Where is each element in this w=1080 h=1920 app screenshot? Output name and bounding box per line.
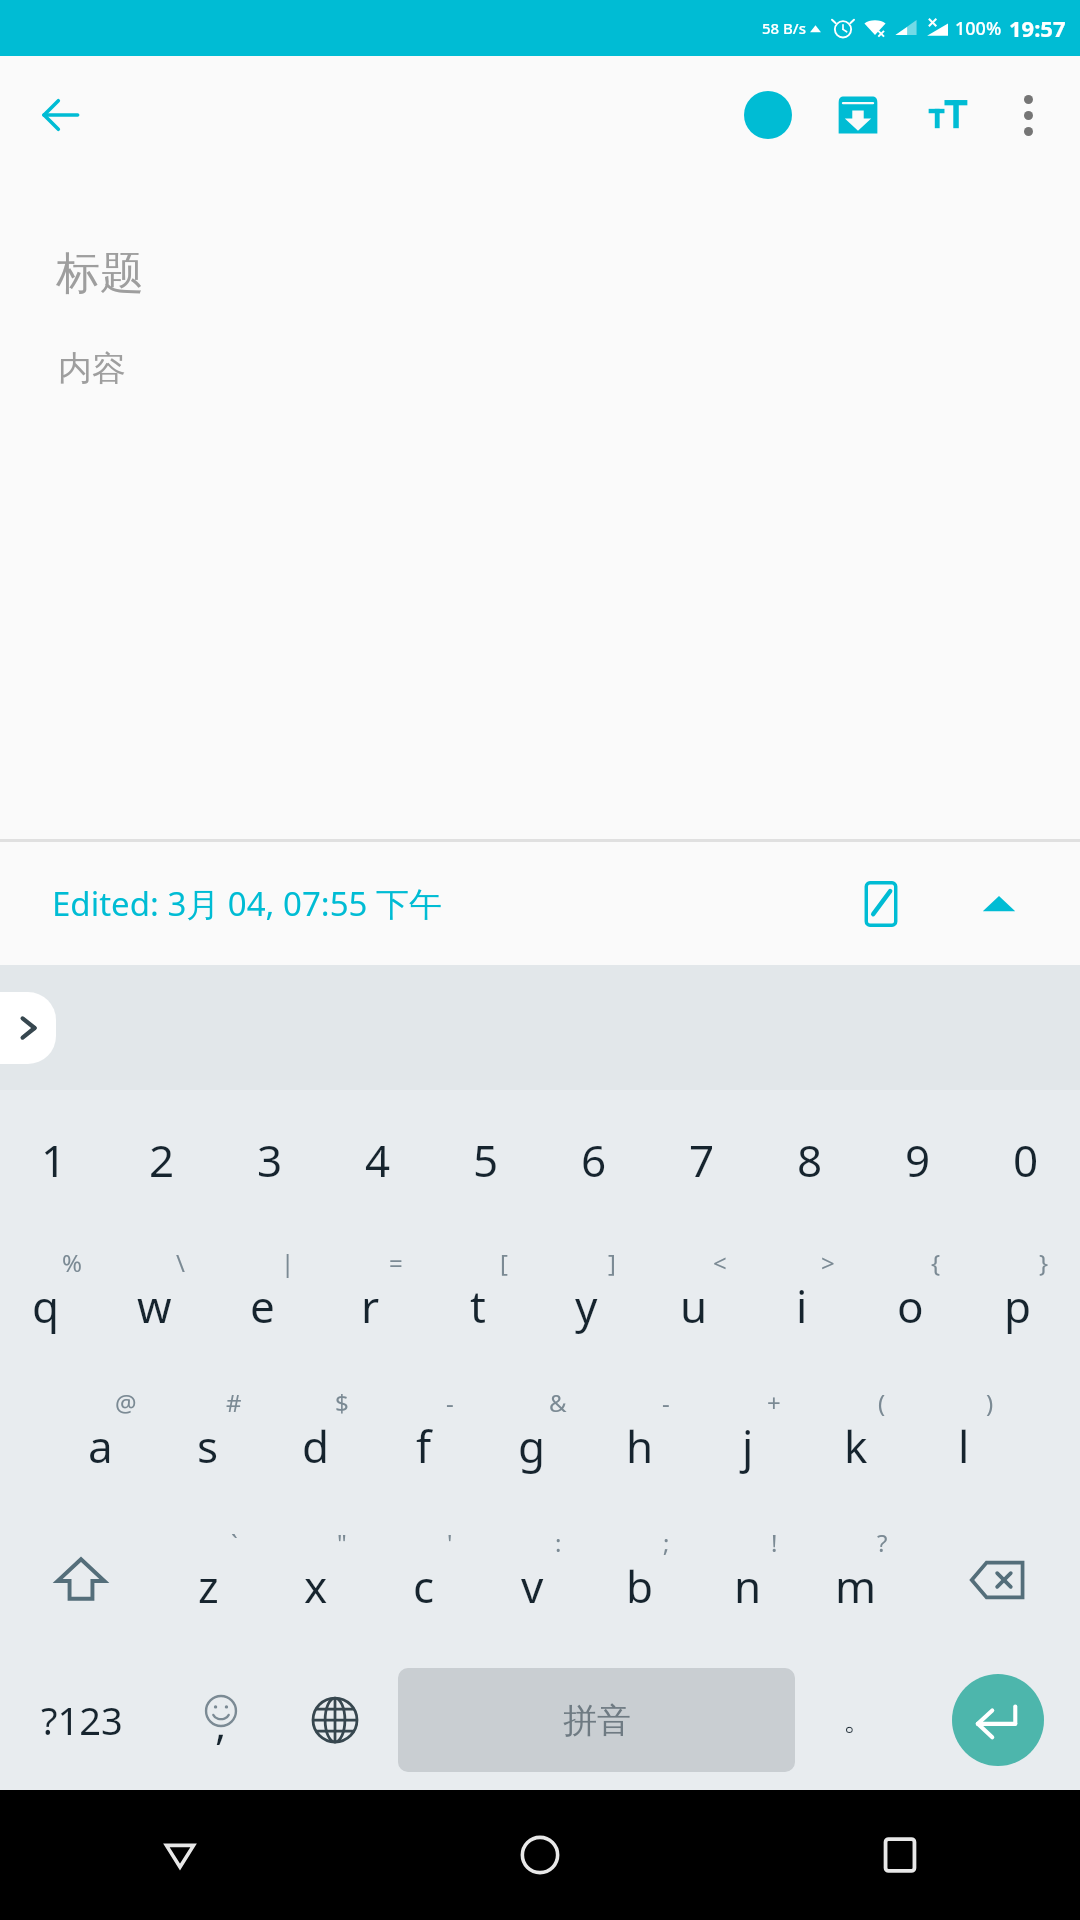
button[interactable]: w <box>108 1230 216 1370</box>
button[interactable]: Backspace <box>918 1510 1080 1650</box>
button[interactable]: e <box>216 1230 324 1370</box>
staticText: n <box>734 1556 762 1616</box>
button[interactable]: a <box>54 1370 162 1510</box>
staticText: f <box>416 1416 432 1476</box>
button[interactable]: 2 <box>108 1090 216 1230</box>
staticText: 9 <box>905 1130 931 1190</box>
button[interactable]: b <box>594 1510 702 1650</box>
button[interactable]: 拼音 <box>398 1668 795 1772</box>
staticText: 3 <box>257 1130 283 1190</box>
button[interactable]: Edit <box>848 871 914 937</box>
button[interactable]: v <box>486 1510 594 1650</box>
staticText: 标题 <box>56 246 144 301</box>
button[interactable]: o <box>864 1230 972 1370</box>
staticText: 8 <box>797 1130 823 1190</box>
staticText: & <box>549 1386 567 1419</box>
button[interactable]: 6 <box>540 1090 648 1230</box>
staticText: b <box>626 1556 654 1616</box>
button[interactable]: u <box>648 1230 756 1370</box>
button[interactable]: y <box>540 1230 648 1370</box>
button[interactable]: 3 <box>216 1090 324 1230</box>
button[interactable]: 标题 <box>0 246 1080 301</box>
staticText: - <box>662 1386 670 1419</box>
button[interactable]: h <box>594 1370 702 1510</box>
button[interactable]: s <box>162 1370 270 1510</box>
button[interactable]: Back <box>0 1790 360 1920</box>
button[interactable]: m <box>810 1510 918 1650</box>
button[interactable]: Enter <box>952 1674 1044 1766</box>
staticText: s <box>197 1416 219 1476</box>
staticText: a <box>88 1416 113 1476</box>
button[interactable]: 1 <box>0 1090 108 1230</box>
staticText: l <box>958 1416 970 1476</box>
staticText: ! <box>771 1526 778 1559</box>
staticText: q <box>32 1276 60 1336</box>
staticText: 6 <box>581 1130 607 1190</box>
staticText: : <box>555 1526 562 1559</box>
staticText: 100% <box>955 16 1002 41</box>
button[interactable]: r <box>324 1230 432 1370</box>
staticText: - <box>446 1386 454 1419</box>
staticText: ] <box>608 1246 616 1279</box>
button[interactable]: 4 <box>324 1090 432 1230</box>
button[interactable]: 0 <box>972 1090 1080 1230</box>
button[interactable]: t <box>432 1230 540 1370</box>
button[interactable]: More options <box>994 81 1062 149</box>
button[interactable]: Home <box>360 1790 720 1920</box>
staticText: k <box>844 1416 868 1476</box>
staticText: e <box>250 1276 275 1336</box>
button[interactable]: x <box>270 1510 378 1650</box>
staticText: m <box>835 1556 877 1616</box>
staticText: $ <box>335 1386 349 1419</box>
staticText: ? <box>877 1526 888 1559</box>
button[interactable]: f <box>378 1370 486 1510</box>
button[interactable]: Recents <box>720 1790 1080 1920</box>
button[interactable]: Back <box>28 83 92 147</box>
staticText: d <box>302 1416 330 1476</box>
staticText: } <box>1039 1246 1049 1279</box>
button[interactable]: Shift <box>0 1510 162 1650</box>
staticText: j <box>742 1416 754 1476</box>
button[interactable]: Note colour <box>734 81 802 149</box>
button[interactable]: n <box>702 1510 810 1650</box>
button[interactable]: Change language <box>278 1650 392 1790</box>
button[interactable]: z <box>162 1510 270 1650</box>
button[interactable]: Archive <box>824 81 892 149</box>
staticText: ( <box>878 1386 886 1419</box>
button[interactable]: c <box>378 1510 486 1650</box>
button[interactable]: 5 <box>432 1090 540 1230</box>
button[interactable]: 。 <box>801 1650 915 1790</box>
button[interactable]: ?123 <box>0 1650 164 1790</box>
button[interactable]: Show toolbar <box>0 992 56 1064</box>
staticText: z <box>198 1556 219 1616</box>
staticText: 2 <box>149 1130 175 1190</box>
button[interactable]: Text size <box>914 81 982 149</box>
staticText: t <box>470 1276 486 1336</box>
button[interactable]: 8 <box>756 1090 864 1230</box>
staticText: > <box>821 1246 835 1279</box>
staticText: y <box>575 1276 598 1336</box>
staticText: i <box>796 1276 808 1336</box>
button[interactable]: j <box>702 1370 810 1510</box>
button[interactable]: k <box>810 1370 918 1510</box>
staticText: o <box>897 1276 924 1336</box>
button[interactable]: g <box>486 1370 594 1510</box>
staticText: 7 <box>689 1130 715 1190</box>
staticText: 。 <box>843 1701 873 1739</box>
staticText: c <box>413 1556 435 1616</box>
button[interactable]: i <box>756 1230 864 1370</box>
button[interactable]: l <box>918 1370 1026 1510</box>
staticText: % <box>62 1246 82 1279</box>
button[interactable]: p <box>972 1230 1080 1370</box>
button[interactable]: q <box>0 1230 108 1370</box>
button[interactable]: d <box>270 1370 378 1510</box>
staticText: ' <box>447 1526 453 1559</box>
button[interactable]: 7 <box>648 1090 756 1230</box>
button[interactable]: Emoji <box>164 1650 278 1790</box>
staticText: p <box>1004 1276 1032 1336</box>
staticText: < <box>713 1246 727 1279</box>
staticText: ; <box>663 1526 670 1559</box>
button[interactable]: 9 <box>864 1090 972 1230</box>
button[interactable]: Expand <box>966 871 1032 937</box>
